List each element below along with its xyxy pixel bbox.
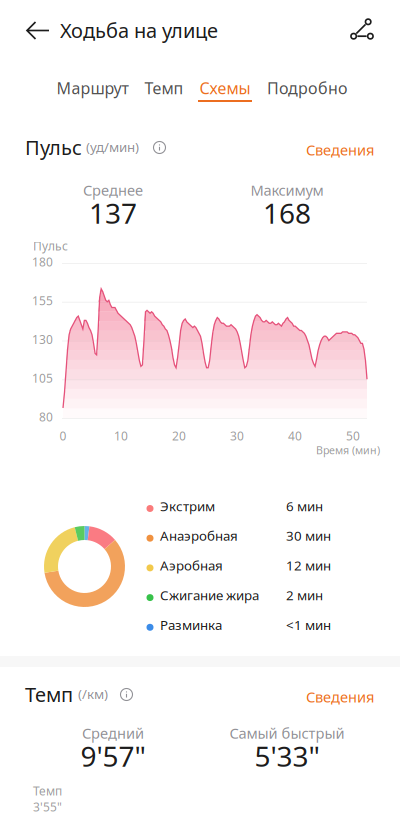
staticText: 10 [114,428,128,444]
staticText: Среднее [83,180,143,200]
staticText: Максимум [250,180,323,200]
staticText: Разминка [160,616,222,634]
staticText: 30 мин [286,527,331,544]
staticText: 80 [39,409,53,425]
staticText: 137 [89,194,137,232]
staticText: (уд/мин) [86,138,139,156]
button[interactable]: Темп [143,77,185,107]
staticText: Экстрим [160,497,215,515]
staticText: Сведения [306,140,374,159]
staticText: 168 [263,194,311,232]
staticText: Темп [33,783,62,799]
staticText: Самый быстрый [229,723,344,743]
staticText: 50 [346,428,360,444]
staticText: 40 [288,428,302,444]
staticText: 105 [32,370,53,386]
staticText: Ходьба на улице [60,17,218,44]
button[interactable]: Маршрут [56,77,129,107]
staticText: Подробно [267,77,348,99]
staticText: Время (мин) [316,443,380,457]
staticText: Средний [82,723,144,743]
staticText: 180 [32,254,53,270]
button[interactable]: Назад [13,8,63,53]
staticText: 20 [172,428,186,444]
staticText: Пульс [25,134,82,161]
staticText: 9'57" [80,737,145,775]
staticText: 155 [32,293,53,309]
staticText: Темп [144,77,183,99]
staticText: (/км) [78,685,108,703]
staticText: 0 [59,428,66,444]
staticText: Сжигание жира [160,586,259,604]
staticText: 3'55" [33,799,62,814]
button[interactable]: Сведения [298,134,382,165]
button[interactable]: Подробно [267,77,348,107]
staticText: Маршрут [56,77,128,99]
staticText: 130 [32,331,53,347]
button[interactable]: Поделиться [337,5,387,53]
staticText: 12 мин [286,556,331,574]
button[interactable]: Схемы [198,77,252,107]
staticText: 6 мин [286,497,323,515]
staticText: Сведения [306,687,374,706]
staticText: Темп [25,681,73,708]
staticText: 5'33" [254,737,319,775]
staticText: Аэробная [160,556,223,574]
staticText: 30 [230,428,244,444]
button[interactable]: Сведения [298,681,382,712]
staticText: Схемы [199,77,250,99]
staticText: 2 мин [286,586,323,604]
staticText: <1 мин [286,616,331,634]
staticText: Анаэробная [160,527,238,544]
staticText: Пульс [33,238,68,254]
